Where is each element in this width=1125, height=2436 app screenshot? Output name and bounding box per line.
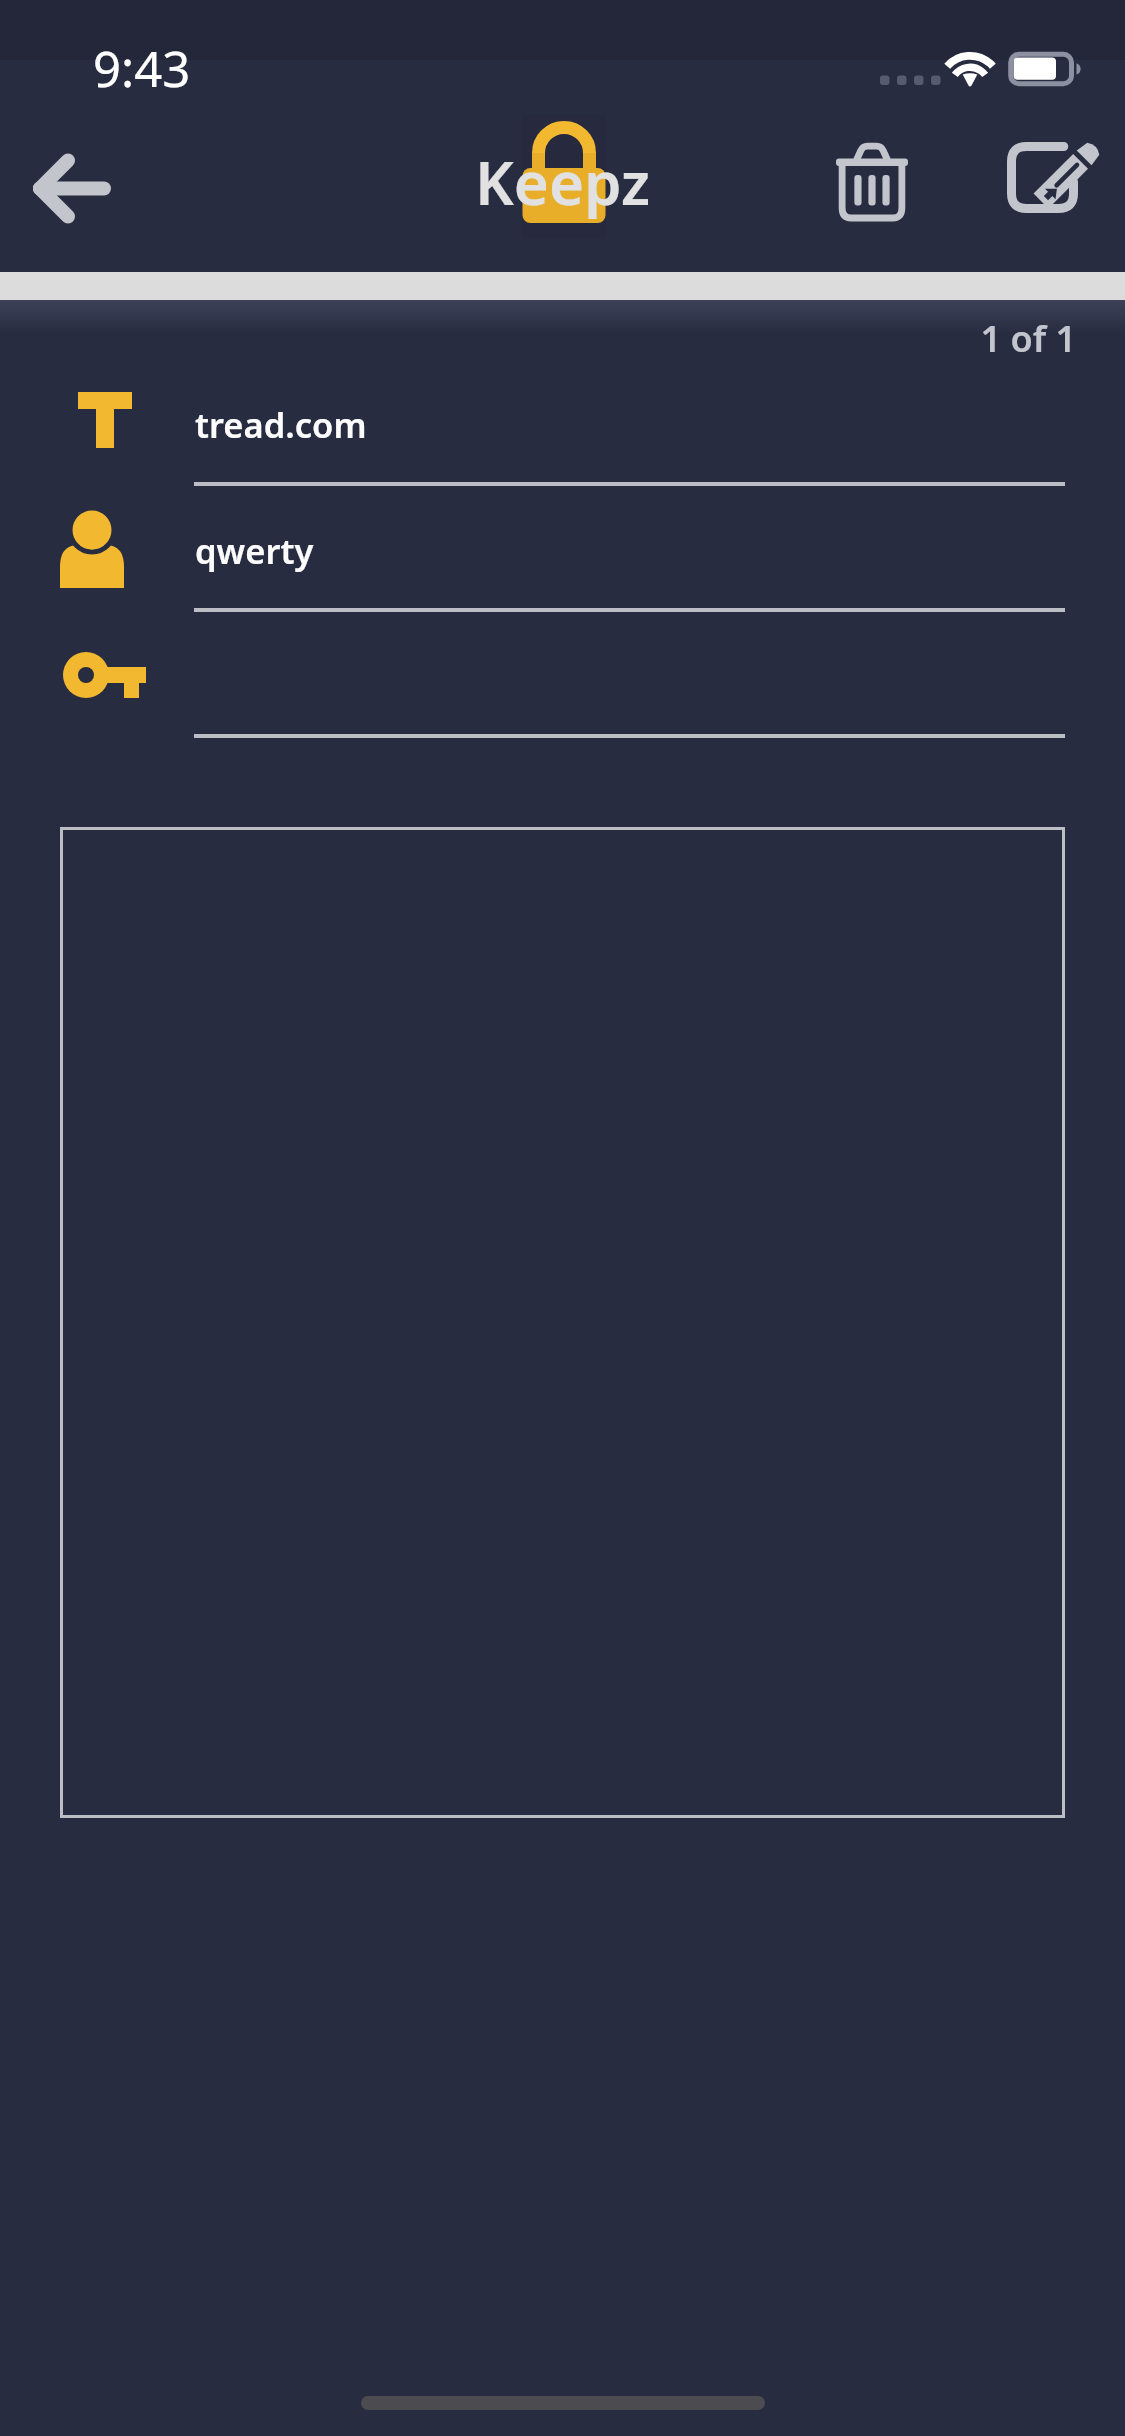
button[interactable]: Notes (60, 827, 1065, 1818)
staticText: 9:43 (93, 35, 191, 102)
button[interactable]: Username (0, 483, 1125, 609)
staticText: qwerty (195, 527, 314, 574)
staticText: Keepz (475, 141, 651, 223)
button[interactable]: Delete (812, 126, 932, 246)
button[interactable]: Back (11, 128, 131, 248)
button[interactable]: Password (0, 609, 1125, 735)
staticText: 1 of 1 (0, 314, 1076, 363)
button[interactable]: Edit (981, 126, 1101, 246)
button[interactable]: Title (0, 357, 1125, 483)
staticText: tread.com (195, 401, 367, 448)
